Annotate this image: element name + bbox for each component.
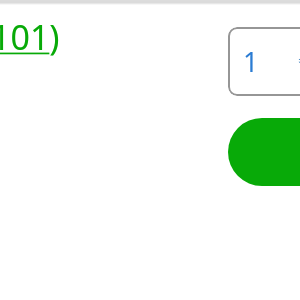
button[interactable]: Increase or decrease quantity <box>294 52 300 68</box>
button[interactable]: Quantity <box>228 27 300 96</box>
button[interactable]: Add to cart <box>228 118 300 186</box>
button[interactable]: 101) <box>0 14 60 60</box>
staticText: 1 <box>243 43 259 80</box>
